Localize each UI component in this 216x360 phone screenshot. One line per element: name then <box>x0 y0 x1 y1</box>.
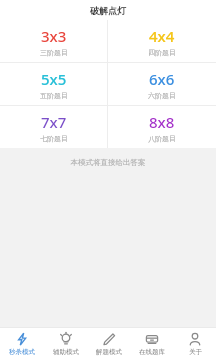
staticText: 五阶题目 <box>40 91 68 100</box>
button[interactable]: 解题模式 <box>87 327 130 360</box>
staticText: 6x6 <box>149 69 175 89</box>
staticText: 破解点灯 <box>90 5 126 16</box>
button[interactable]: 7x7 <box>0 106 107 148</box>
staticText: 8x8 <box>149 112 175 132</box>
staticText: 3x3 <box>41 26 67 46</box>
staticText: 关于 <box>189 348 202 356</box>
staticText: 在线题库 <box>139 348 165 356</box>
button[interactable]: 5x5 <box>0 63 107 105</box>
staticText: 辅助模式 <box>53 348 79 356</box>
button[interactable]: 辅助模式 <box>44 327 87 360</box>
staticText: 本模式将直接给出答案 <box>0 158 216 167</box>
staticText: 三阶题目 <box>40 48 68 57</box>
staticText: 秒杀模式 <box>9 348 35 356</box>
staticText: 7x7 <box>41 112 67 132</box>
staticText: 四阶题目 <box>148 48 176 57</box>
button[interactable]: 4x4 <box>108 20 216 62</box>
button[interactable]: 秒杀模式 <box>0 327 44 360</box>
staticText: 解题模式 <box>96 348 122 356</box>
staticText: 六阶题目 <box>148 91 176 100</box>
staticText: 5x5 <box>41 69 67 89</box>
button[interactable]: 3x3 <box>0 20 107 62</box>
staticText: 4x4 <box>149 26 175 46</box>
button[interactable]: 在线题库 <box>130 327 173 360</box>
button[interactable]: 8x8 <box>108 106 216 148</box>
staticText: 七阶题目 <box>40 134 68 143</box>
staticText: 八阶题目 <box>148 134 176 143</box>
button[interactable]: 6x6 <box>108 63 216 105</box>
button[interactable]: 关于 <box>173 327 216 360</box>
